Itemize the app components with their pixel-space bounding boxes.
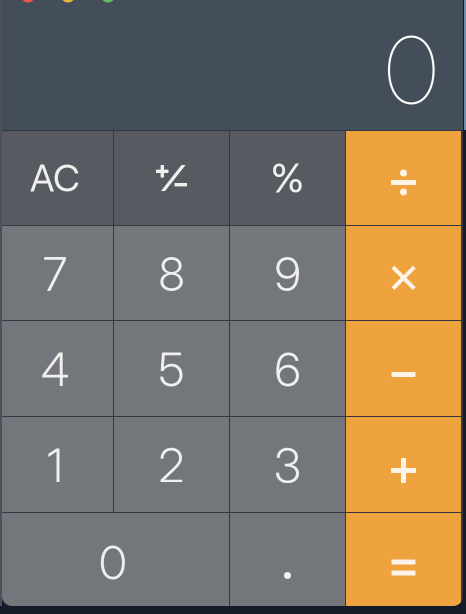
button[interactable]: 2	[114, 417, 229, 512]
staticText: 6	[274, 341, 300, 398]
staticText: 1	[47, 437, 63, 494]
button[interactable]: Multiply	[346, 226, 461, 320]
staticText: 0	[99, 534, 127, 591]
staticText: ×	[388, 240, 419, 312]
button[interactable]: Divide	[346, 131, 461, 225]
button[interactable]: Plus minus	[114, 131, 229, 225]
staticText: 9	[274, 246, 300, 302]
button[interactable]: 3	[230, 417, 345, 512]
button[interactable]: Percent	[230, 131, 345, 225]
button[interactable]: 1	[0, 417, 113, 512]
button[interactable]: 4	[0, 321, 113, 416]
button[interactable]: Subtract	[346, 321, 461, 416]
button[interactable]: 5	[114, 321, 229, 416]
button[interactable]: Add	[346, 417, 461, 512]
staticText: 3	[274, 437, 301, 494]
staticText: 7	[43, 246, 67, 302]
button[interactable]: Decimal point	[230, 513, 345, 606]
staticText: 4	[41, 341, 69, 398]
button[interactable]: 9	[230, 226, 345, 320]
button[interactable]: 8	[114, 226, 229, 320]
staticText: 8	[158, 246, 184, 302]
staticText: AC	[30, 155, 80, 201]
button[interactable]: All clear	[0, 131, 113, 225]
button[interactable]: 6	[230, 321, 345, 416]
staticText: 0	[385, 13, 438, 127]
button[interactable]: 0	[0, 513, 229, 606]
staticText: %	[270, 154, 304, 202]
staticText: 2	[158, 437, 184, 494]
button[interactable]: 7	[0, 226, 113, 320]
staticText: 5	[158, 341, 184, 398]
button[interactable]: Equals	[346, 513, 461, 606]
